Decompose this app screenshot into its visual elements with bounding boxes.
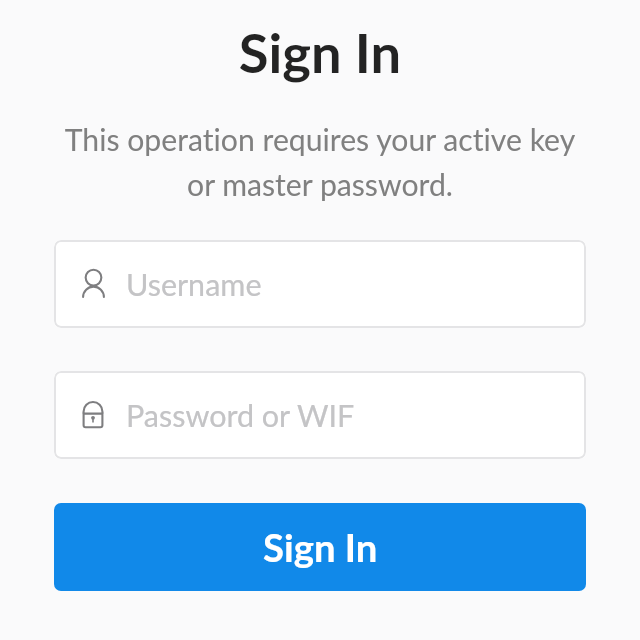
other: Password	[79, 401, 107, 429]
staticText: Password or WIF	[126, 397, 355, 434]
staticText: Sign In	[0, 19, 640, 84]
button[interactable]: User	[54, 240, 586, 328]
staticText: This operation requires your active key …	[0, 121, 640, 202]
other: User	[79, 270, 107, 298]
staticText: Username	[126, 266, 262, 303]
staticText: Sign In	[263, 524, 378, 570]
button[interactable]: Password	[54, 371, 586, 459]
button[interactable]: Sign In	[54, 503, 586, 591]
